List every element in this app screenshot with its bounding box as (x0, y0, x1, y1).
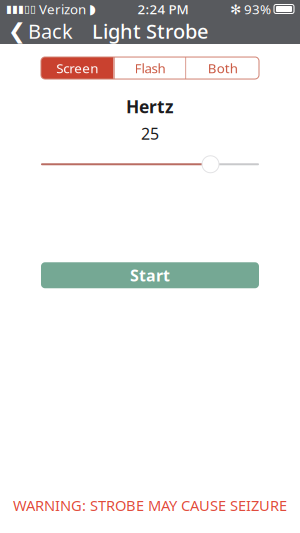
staticText: Start (130, 265, 170, 286)
staticText: ◗ (89, 1, 96, 16)
staticText: ▮▮▮▯▯ (6, 3, 36, 15)
button[interactable]: ❮ (0, 18, 81, 44)
button[interactable]: Screen (41, 57, 114, 79)
staticText: WARNING: STROBE MAY CAUSE SEIZURE (13, 495, 287, 515)
staticText: Both (208, 59, 238, 77)
staticText: 2:24 PM (137, 0, 188, 18)
staticText: 25 (141, 123, 159, 144)
button[interactable]: Start (41, 262, 259, 288)
staticText: Back (28, 18, 73, 44)
button[interactable]: Flash (114, 57, 186, 79)
staticText: Light Strobe (92, 18, 208, 44)
staticText: Verizon (36, 0, 89, 18)
staticText: ❮ (8, 19, 26, 43)
button[interactable]: Both (186, 57, 259, 79)
staticText: Screen (56, 59, 98, 77)
staticText: Flash (134, 59, 165, 77)
staticText: Hertz (126, 95, 174, 118)
staticText: ✻ 93% (230, 0, 271, 18)
